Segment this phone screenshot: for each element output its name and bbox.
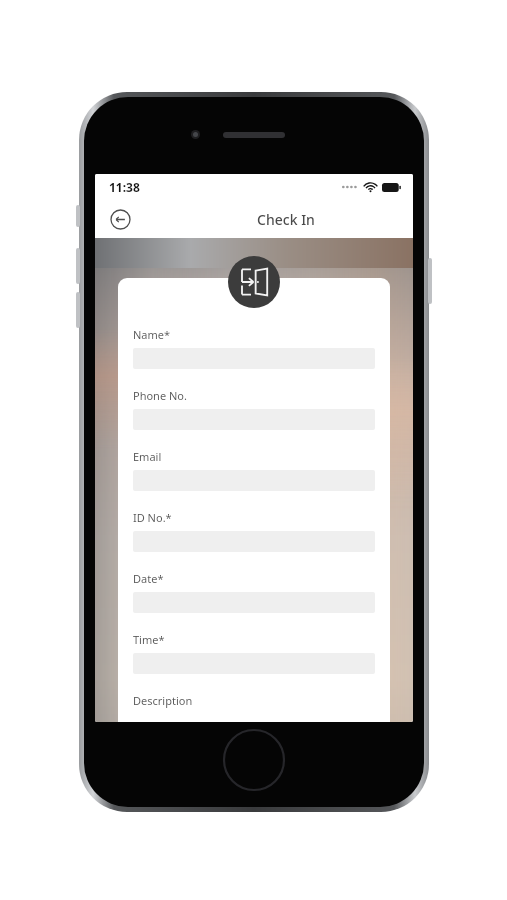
- staticText: 11:38: [109, 179, 140, 195]
- staticText: Phone No.: [133, 388, 187, 403]
- button[interactable]: Check In: [228, 256, 280, 308]
- staticText: Description: [133, 693, 193, 708]
- staticText: Time*: [133, 632, 165, 647]
- staticText: Email: [133, 449, 162, 464]
- button[interactable]: Home: [222, 728, 286, 792]
- staticText: Check In: [257, 210, 315, 229]
- staticText: Date*: [133, 571, 164, 586]
- staticText: Name*: [133, 327, 171, 342]
- button[interactable]: Back: [107, 206, 133, 232]
- staticText: ID No.*: [133, 510, 172, 525]
